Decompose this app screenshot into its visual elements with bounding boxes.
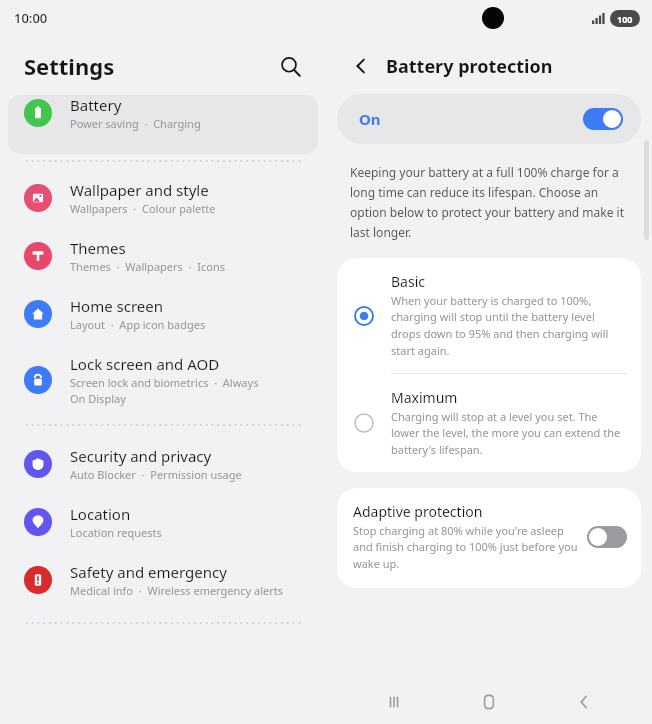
staticText: Location [70,504,131,524]
button[interactable]: Recents [367,682,421,722]
button[interactable]: Adaptive protection [337,488,641,588]
button[interactable]: Search [272,48,308,84]
button[interactable]: Safety and emergency [0,562,326,598]
button[interactable]: Home [462,682,516,722]
button[interactable]: Themes [0,238,326,274]
button[interactable]: Location [0,504,326,540]
button[interactable]: Wallpaper and style [0,180,326,216]
staticText: Power saving · Charging [70,116,201,131]
button[interactable]: Security and privacy [0,446,326,482]
staticText: Adaptive protection [353,502,483,521]
staticText: Location requests [70,525,162,540]
staticText: Auto Blocker · Permission usage [70,467,242,482]
staticText: Lock screen and AOD [70,354,220,374]
staticText: Safety and emergency [70,562,227,582]
staticText: On [359,109,381,129]
button[interactable]: Maximum [337,374,641,472]
staticText: Home screen [70,296,164,316]
button[interactable]: Battery [8,95,318,154]
button[interactable]: Home screen [0,296,326,332]
button[interactable] [587,526,627,548]
staticText: Wallpaper and style [70,180,209,200]
staticText: Layout · App icon badges [70,317,206,332]
staticText: When your battery is charged to 100%, ch… [391,293,627,359]
button[interactable]: On [337,94,641,144]
staticText: Screen lock and biometrics · Always On D… [70,375,260,406]
button[interactable]: Lock screen and AOD [0,354,326,406]
staticText: Maximum [391,388,458,407]
staticText: Medical info · Wireless emergency alerts [70,583,284,598]
button[interactable]: Basic [337,258,641,373]
staticText: Charging will stop at a level you set. T… [391,409,627,458]
staticText: Battery protection [386,54,553,79]
staticText: Themes [70,238,126,258]
button[interactable]: Back [344,49,378,83]
button[interactable]: Back [557,682,611,722]
button[interactable] [583,108,623,130]
staticText: 10:00 [14,9,48,27]
staticText: Keeping your battery at a full 100% char… [350,164,628,240]
staticText: Wallpapers · Colour palette [70,201,216,216]
staticText: Stop charging at 80% while you're asleep… [353,523,579,572]
staticText: Themes · Wallpapers · Icons [70,259,225,274]
staticText: Security and privacy [70,446,212,466]
staticText: Settings [24,51,115,81]
staticText: Battery [70,95,122,115]
staticText: 100 [617,13,633,25]
staticText: Basic [391,272,425,291]
